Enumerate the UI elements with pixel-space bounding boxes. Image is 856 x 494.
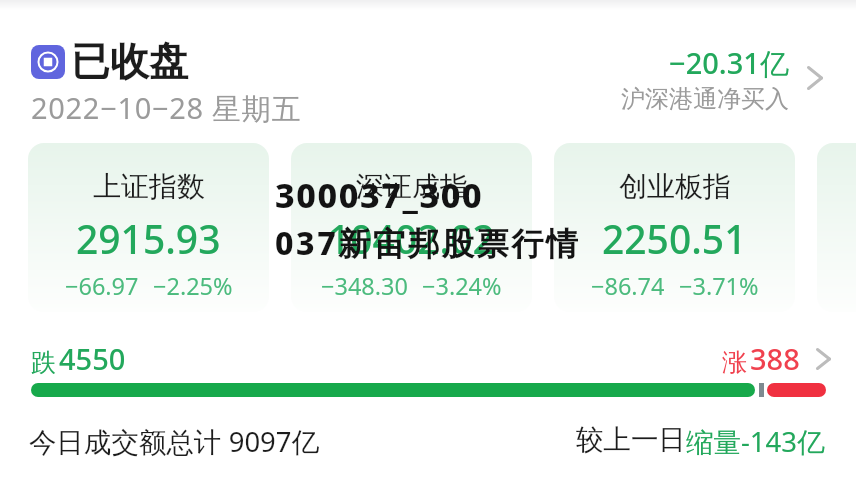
button[interactable] — [817, 143, 856, 312]
staticText: −2.25% — [153, 270, 233, 302]
staticText: −66.97 — [65, 270, 139, 302]
staticText: −86.74 — [591, 270, 665, 302]
staticText: −20.31亿 — [669, 43, 789, 83]
staticText: 沪深港通净买入 — [621, 84, 789, 114]
staticText: 4550 — [59, 339, 126, 378]
staticText: 缩量-143亿 — [686, 423, 825, 461]
button[interactable]: −20.31亿 — [617, 43, 823, 114]
staticText: −3.71% — [679, 270, 759, 302]
staticText: 300037_300 — [275, 172, 484, 218]
staticText: 2022−10−28 星期五 — [31, 88, 302, 128]
staticText: 跌 — [31, 347, 56, 378]
staticText: −348.30 — [321, 270, 408, 302]
button[interactable]: 深证成指 — [291, 143, 532, 312]
staticText: 涨 — [722, 347, 747, 378]
button[interactable]: 创业板指 — [554, 143, 795, 312]
staticText: 深证成指 — [356, 169, 468, 204]
staticText: 较上一日 — [576, 423, 686, 458]
button[interactable]: 跌 — [31, 339, 831, 378]
staticText: 已收盘 — [71, 37, 188, 86]
button[interactable]: 上证指数 — [28, 143, 269, 312]
staticText: 今日成交额总计 9097亿 — [29, 423, 320, 461]
staticText: 2915.93 — [76, 212, 221, 265]
staticText: 2250.51 — [602, 212, 747, 265]
staticText: −3.24% — [422, 270, 502, 302]
staticText: 388 — [750, 339, 800, 378]
other: Market status — [31, 45, 65, 79]
staticText: 10402.02 — [328, 212, 495, 265]
staticText: 创业板指 — [619, 169, 731, 204]
staticText: 037新宙邦股票行情 — [275, 221, 581, 265]
staticText: 上证指数 — [93, 169, 205, 204]
